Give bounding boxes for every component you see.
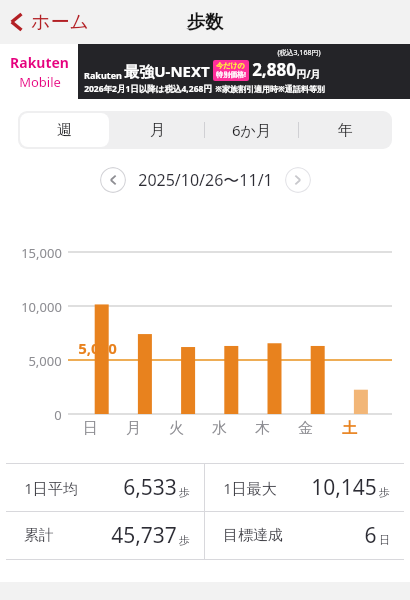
button[interactable]: 月 xyxy=(111,111,204,149)
staticText: 月 xyxy=(150,121,165,140)
staticText: 土 xyxy=(342,419,357,438)
button[interactable]: 6か月 xyxy=(204,111,298,149)
staticText: 10,000 xyxy=(21,298,62,316)
staticText: 日 xyxy=(83,419,98,438)
staticText: 6,533 xyxy=(123,473,177,502)
staticText: 10,145 xyxy=(311,473,377,502)
staticText: 15,000 xyxy=(21,244,62,262)
staticText: 45,737 xyxy=(111,521,177,550)
button[interactable]: 目標達成 xyxy=(205,512,404,559)
staticText: 円/月 xyxy=(296,67,321,81)
staticText: 5,000 xyxy=(78,338,117,358)
staticText: Rakuten xyxy=(10,53,69,72)
staticText: 歩 xyxy=(179,485,190,499)
staticText: 累計 xyxy=(24,526,54,545)
button[interactable]: 累計 xyxy=(6,512,204,559)
button[interactable]: 週 xyxy=(18,111,111,149)
other: Back xyxy=(10,12,24,32)
staticText: 日 xyxy=(379,533,390,547)
button[interactable]: Rakuten xyxy=(0,44,410,99)
staticText: 1日平均 xyxy=(24,478,78,498)
staticText: 火 xyxy=(169,419,184,438)
staticText: 6か月 xyxy=(232,120,271,140)
button[interactable]: Previous week xyxy=(100,167,126,193)
staticText: 0 xyxy=(54,406,62,424)
staticText: (税込3,168円) xyxy=(277,48,321,58)
staticText: 週 xyxy=(57,121,72,140)
staticText: 今だけの xyxy=(216,61,245,70)
staticText: 2026年2月1日以降は税込4,268円 xyxy=(84,83,212,95)
staticText: 歩 xyxy=(379,485,390,499)
staticText: 1日最大 xyxy=(223,478,277,498)
button[interactable]: Back xyxy=(0,4,101,40)
staticText: 金 xyxy=(298,419,313,438)
staticText: 5,000 xyxy=(28,352,62,370)
staticText: 特別価格! xyxy=(216,70,246,80)
staticText: 月 xyxy=(126,419,141,438)
button[interactable]: 1日平均 xyxy=(6,464,204,511)
staticText: 木 xyxy=(255,419,270,438)
button[interactable]: 年 xyxy=(298,111,392,149)
staticText: 年 xyxy=(338,121,353,140)
staticText: ホーム xyxy=(31,10,89,34)
staticText: Rakuten xyxy=(84,69,122,81)
staticText: 6 xyxy=(364,521,377,550)
staticText: 目標達成 xyxy=(223,526,283,545)
staticText: 歩 xyxy=(179,533,190,547)
staticText: 水 xyxy=(212,419,227,438)
button[interactable]: Next week xyxy=(285,167,311,193)
staticText: 2025/10/26〜11/1 xyxy=(138,169,273,191)
staticText: 2,880 xyxy=(252,58,296,81)
staticText: Mobile xyxy=(19,73,61,91)
staticText: 歩数 xyxy=(187,11,223,34)
button[interactable]: 1日最大 xyxy=(205,464,404,511)
staticText: ※家族割引適用時※通話料等別 xyxy=(215,83,325,94)
staticText: 最強U-NEXT xyxy=(124,61,210,81)
